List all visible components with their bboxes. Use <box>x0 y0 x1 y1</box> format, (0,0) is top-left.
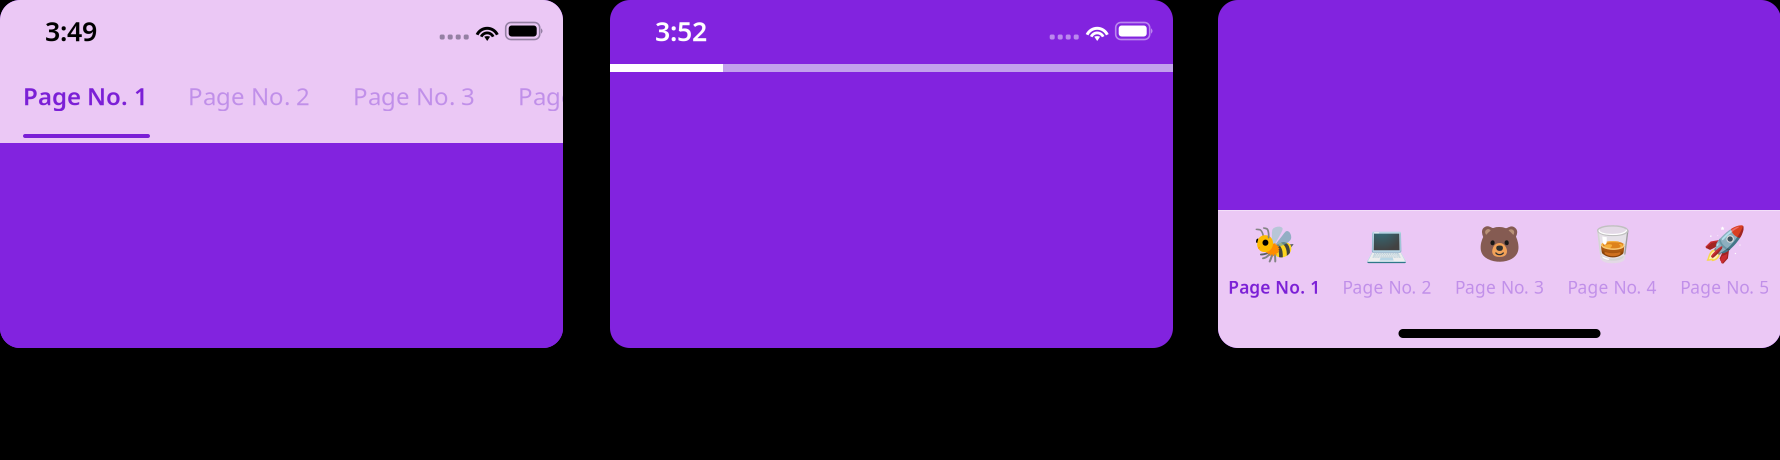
button[interactable]: 🚀 <box>1668 211 1780 301</box>
staticText: 💻 <box>1365 224 1408 264</box>
staticText: Page No. 1 <box>1228 276 1320 299</box>
staticText: 3:52 <box>655 13 707 49</box>
button[interactable]: 💻 <box>1331 211 1443 301</box>
staticText: Page No. 3 <box>353 80 475 112</box>
button[interactable]: 🐝 <box>1218 211 1331 301</box>
staticText: Page No. 3 <box>1455 276 1544 299</box>
staticText: Page No. 1 <box>23 80 148 112</box>
staticText: Page No. 2 <box>1342 276 1431 299</box>
staticText: 🐻 <box>1478 224 1521 264</box>
button[interactable]: 🐻 <box>1443 211 1556 301</box>
button[interactable]: 🥃 <box>1556 211 1668 301</box>
staticText: 🥃 <box>1591 224 1634 264</box>
staticText: 3:49 <box>45 13 97 49</box>
button[interactable]: Page No. 5 <box>683 56 848 143</box>
button[interactable]: Page No. 1 <box>23 56 188 143</box>
staticText: Page No. 2 <box>188 80 310 112</box>
button[interactable]: Page No. 3 <box>353 56 518 143</box>
button[interactable]: Page No. 4 <box>518 56 683 143</box>
staticText: Page No. 4 <box>518 80 640 112</box>
staticText: 🐝 <box>1253 224 1296 264</box>
staticText: Page No. 4 <box>1568 276 1657 299</box>
staticText: 🚀 <box>1703 224 1746 264</box>
button[interactable]: Page No. 2 <box>188 56 353 143</box>
staticText: Page No. 5 <box>1680 276 1769 299</box>
